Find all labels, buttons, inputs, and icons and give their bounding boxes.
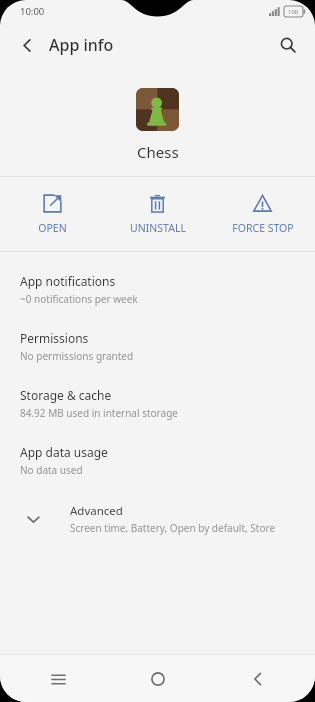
- button[interactable]: Storage & cache: [0, 375, 315, 432]
- staticText: UNINSTALL: [130, 221, 186, 235]
- staticText: Permissions: [20, 330, 89, 346]
- staticText: 100: [288, 8, 299, 16]
- staticText: Storage & cache: [20, 387, 112, 403]
- staticText: App info: [49, 34, 114, 56]
- staticText: FORCE STOP: [232, 221, 294, 235]
- button[interactable]: Home: [136, 657, 180, 701]
- staticText: 84.92 MB used in internal storage: [20, 406, 178, 420]
- button[interactable]: Back: [10, 28, 44, 62]
- staticText: No permissions granted: [20, 349, 134, 363]
- staticText: Screen time, Battery, Open by default, S…: [70, 521, 276, 535]
- staticText: 10:00: [20, 5, 45, 18]
- staticText: App notifications: [20, 273, 116, 289]
- button[interactable]: App notifications: [0, 261, 315, 318]
- staticText: ~0 notifications per week: [20, 292, 138, 306]
- button[interactable]: Advanced: [0, 495, 315, 543]
- button[interactable]: UNINSTALL: [105, 177, 210, 251]
- staticText: Advanced: [70, 503, 123, 519]
- button[interactable]: Search: [270, 27, 306, 63]
- staticText: OPEN: [38, 221, 67, 235]
- button[interactable]: Permissions: [0, 318, 315, 375]
- button[interactable]: Back: [236, 657, 280, 701]
- button[interactable]: App data usage: [0, 432, 315, 489]
- button[interactable]: Recent apps: [36, 657, 80, 701]
- staticText: App data usage: [20, 444, 108, 460]
- button[interactable]: FORCE STOP: [210, 177, 315, 251]
- staticText: Chess: [137, 142, 179, 162]
- staticText: No data used: [20, 463, 83, 477]
- button[interactable]: OPEN: [0, 177, 105, 251]
